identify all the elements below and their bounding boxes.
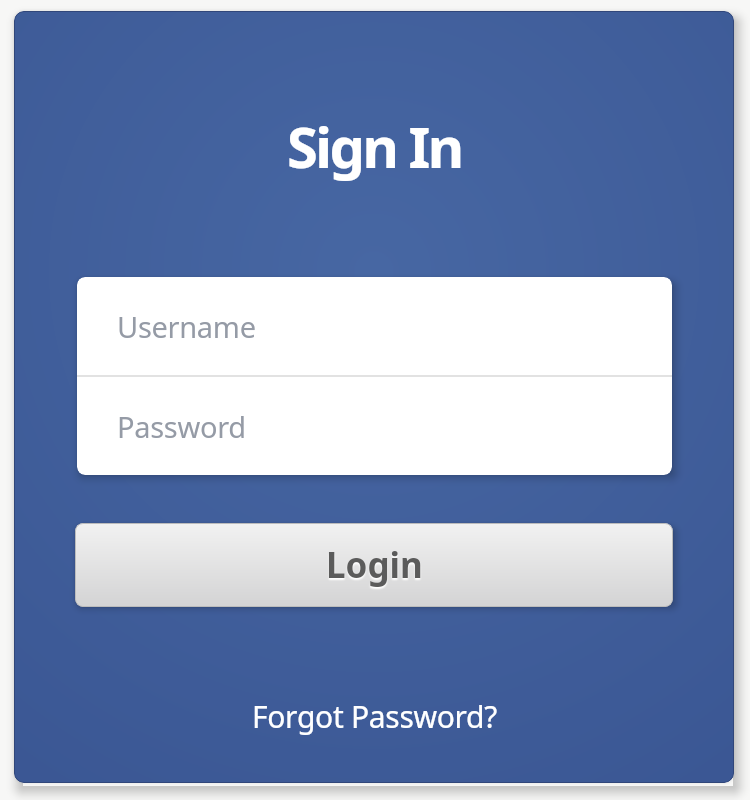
button[interactable]: Password [77,377,672,475]
staticText: Sign In [287,108,462,184]
staticText: Login [326,541,423,589]
button[interactable]: Login [75,523,673,607]
button[interactable]: Forgot Password? [252,696,497,737]
staticText: Username [117,307,256,346]
button[interactable]: Username [77,277,672,375]
staticText: Password [117,407,246,446]
